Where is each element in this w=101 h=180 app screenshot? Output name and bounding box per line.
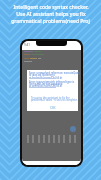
staticText: at androidx/room/DbUtil.kt bbox=[29, 76, 80, 80]
staticText: grammatical problems(need Proj bbox=[11, 18, 90, 25]
staticText: Use AI assistant helps you fix bbox=[16, 11, 86, 18]
staticText: problems.It takes ~6 secs to complete. bbox=[31, 98, 81, 102]
staticText: of java.sql.Statement bbox=[29, 73, 80, 77]
button[interactable]: OK bbox=[46, 104, 60, 111]
staticText: Error: unresolved reference: executeQuer… bbox=[29, 71, 80, 75]
staticText: OK bbox=[50, 105, 56, 110]
staticText: Try using the assistant to fix the bbox=[31, 96, 81, 100]
staticText: Error: type mismatch: inferred type is bbox=[29, 80, 80, 84]
staticText: 9:41 bbox=[24, 43, 30, 47]
staticText: Intelligent code syntax checker. bbox=[13, 4, 89, 11]
button[interactable]: Send bbox=[70, 126, 76, 132]
staticText: at androidx/room/DbUtil.kt bbox=[29, 84, 80, 88]
staticText: String but Int was expected bbox=[29, 82, 80, 86]
